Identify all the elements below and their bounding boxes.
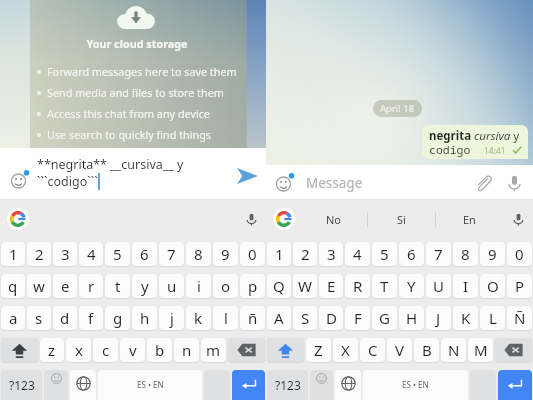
button[interactable]: e: [53, 274, 77, 298]
button[interactable]: r: [79, 274, 103, 298]
button[interactable]: Emoji: [275, 173, 294, 192]
button[interactable]: j: [159, 306, 184, 330]
button[interactable]: i: [186, 274, 211, 298]
button[interactable]: E: [319, 274, 343, 298]
button[interactable]: L: [480, 306, 505, 330]
button[interactable]: 0: [240, 242, 265, 266]
button[interactable]: I: [453, 274, 478, 298]
button[interactable]: H: [399, 306, 424, 330]
button[interactable]: k: [186, 306, 211, 330]
button[interactable]: W: [293, 274, 317, 298]
button[interactable]: t: [105, 274, 130, 298]
button[interactable]: M: [468, 338, 493, 362]
button[interactable]: X: [333, 338, 358, 362]
button[interactable]: 5: [372, 242, 397, 266]
button[interactable]: y: [132, 274, 157, 298]
button[interactable]: Y: [399, 274, 424, 298]
button[interactable]: l: [213, 306, 238, 330]
button[interactable]: D: [319, 306, 343, 330]
button[interactable]: C: [360, 338, 385, 362]
button[interactable]: Voice message: [500, 169, 528, 197]
button[interactable]: 4: [345, 242, 370, 266]
button[interactable]: b: [147, 338, 172, 362]
button[interactable]: 6: [399, 242, 424, 266]
button[interactable]: Google: [273, 208, 295, 230]
button[interactable]: 2: [293, 242, 317, 266]
button[interactable]: o: [213, 274, 238, 298]
button[interactable]: Z: [306, 338, 331, 362]
button[interactable]: 8: [453, 242, 478, 266]
button[interactable]: Language: [335, 370, 361, 400]
button[interactable]: 9: [480, 242, 505, 266]
button[interactable]: O: [480, 274, 505, 298]
button[interactable]: G: [372, 306, 397, 330]
button[interactable]: w: [27, 274, 51, 298]
button[interactable]: Language: [70, 370, 96, 400]
button[interactable]: Q: [267, 274, 291, 298]
button[interactable]: S: [293, 306, 317, 330]
button[interactable]: N: [441, 338, 466, 362]
button[interactable]: 5: [105, 242, 130, 266]
button[interactable]: Send: [230, 159, 264, 193]
button[interactable]: U: [426, 274, 451, 298]
button[interactable]: Shift: [267, 338, 304, 362]
button[interactable]: Enter: [232, 370, 265, 400]
button[interactable]: p: [240, 274, 265, 298]
button[interactable]: Ñ: [507, 306, 532, 330]
button[interactable]: u: [159, 274, 184, 298]
button[interactable]: Emoji: [310, 370, 333, 400]
button[interactable]: V: [387, 338, 412, 362]
button[interactable]: c: [93, 338, 118, 362]
button[interactable]: 4: [79, 242, 103, 266]
button[interactable]: Emoji: [10, 170, 29, 189]
button[interactable]: Si: [368, 200, 435, 238]
button[interactable]: A: [267, 306, 291, 330]
button[interactable]: 1: [1, 242, 25, 266]
button[interactable]: R: [345, 274, 370, 298]
button[interactable]: n: [174, 338, 199, 362]
button[interactable]: 9: [213, 242, 238, 266]
button[interactable]: 7: [426, 242, 451, 266]
button[interactable]: v: [120, 338, 145, 362]
button[interactable]: h: [132, 306, 157, 330]
button[interactable]: s: [27, 306, 51, 330]
button[interactable]: ?123: [267, 370, 308, 400]
button[interactable]: Google: [7, 208, 29, 230]
button[interactable]: negrita cursiva y: [422, 125, 528, 159]
button[interactable]: 8: [186, 242, 211, 266]
button[interactable]: Voice input: [240, 208, 262, 230]
button[interactable]: Shift: [1, 338, 38, 362]
button[interactable]: P: [507, 274, 532, 298]
button[interactable]: Voice input: [507, 208, 529, 230]
button[interactable]: B: [414, 338, 439, 362]
button[interactable]: ES • EN: [363, 370, 468, 400]
button[interactable]: 3: [53, 242, 77, 266]
button[interactable]: April 18: [380, 102, 415, 115]
button[interactable]: Emoji: [44, 370, 68, 400]
button[interactable]: d: [53, 306, 77, 330]
button[interactable]: z: [40, 338, 64, 362]
button[interactable]: 0: [507, 242, 532, 266]
button[interactable]: T: [372, 274, 397, 298]
button[interactable]: Attach: [469, 169, 497, 197]
button[interactable]: f: [79, 306, 103, 330]
button[interactable]: 3: [319, 242, 343, 266]
button[interactable]: No: [300, 200, 367, 238]
button[interactable]: Backspace: [228, 338, 265, 362]
button[interactable]: 1: [267, 242, 291, 266]
button[interactable]: a: [1, 306, 25, 330]
button[interactable]: ES • EN: [98, 370, 202, 400]
button[interactable]: Backspace: [495, 338, 532, 362]
button[interactable]: F: [345, 306, 370, 330]
button[interactable]: En: [436, 200, 503, 238]
button[interactable]: m: [201, 338, 226, 362]
button[interactable]: 2: [27, 242, 51, 266]
button[interactable]: Enter: [498, 370, 532, 400]
button[interactable]: 7: [159, 242, 184, 266]
button[interactable]: J: [426, 306, 451, 330]
button[interactable]: ñ: [240, 306, 265, 330]
button[interactable]: q: [1, 274, 25, 298]
button[interactable]: ?123: [1, 370, 42, 400]
